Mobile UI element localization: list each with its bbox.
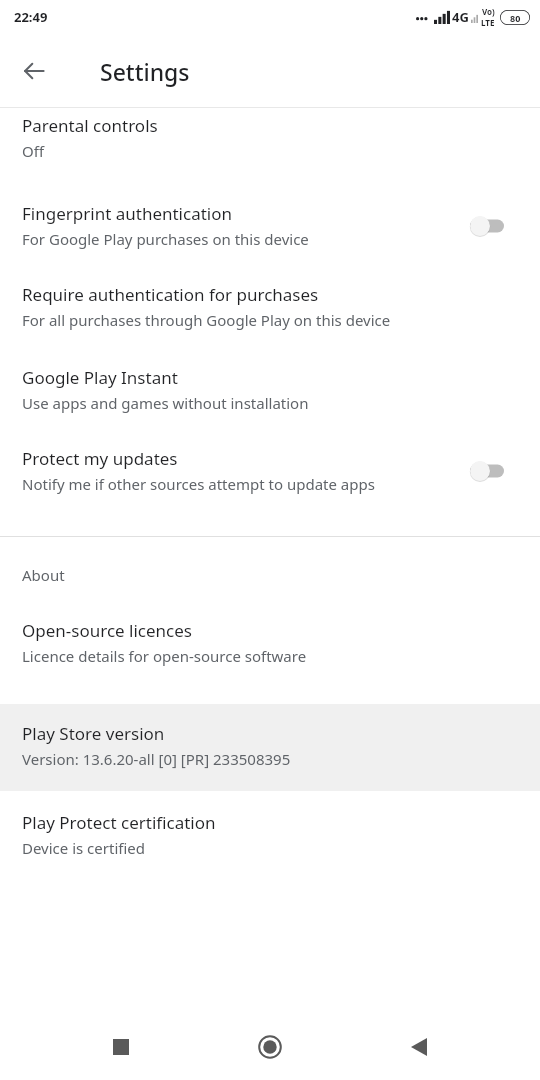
staticText: About: [22, 565, 65, 585]
staticText: Use apps and games without installation: [22, 393, 309, 413]
button[interactable]: Google Play Instant: [0, 348, 540, 431]
staticText: 80: [510, 12, 521, 24]
staticText: Device is certified: [22, 838, 145, 858]
staticText: Notify me if other sources attempt to up…: [22, 474, 375, 494]
staticText: Off: [22, 141, 45, 161]
staticText: Require authentication for purchases: [22, 283, 319, 306]
button[interactable]: Back: [10, 47, 58, 95]
staticText: Open-source licences: [22, 619, 192, 642]
button[interactable]: Fingerprint authentication: [0, 186, 540, 265]
button[interactable]: Play Store version: [0, 704, 540, 791]
staticText: Fingerprint authentication: [22, 202, 233, 225]
staticText: For all purchases through Google Play on…: [22, 310, 391, 330]
button[interactable]: Recent apps: [93, 1019, 149, 1075]
staticText: 22:49: [14, 8, 48, 26]
staticText: LTE: [481, 17, 495, 28]
button[interactable]: Protect my updates: [0, 431, 540, 510]
button[interactable]: Home: [242, 1019, 298, 1075]
staticText: Play Store version: [22, 722, 165, 745]
staticText: Vo): [482, 6, 495, 17]
staticText: Version: 13.6.20-all [0] [PR] 233508395: [22, 749, 291, 769]
button[interactable]: Toggle: [468, 206, 524, 246]
staticText: 4G: [452, 8, 469, 26]
staticText: Google Play Instant: [22, 366, 178, 389]
button[interactable]: Play Protect certification: [0, 811, 540, 858]
staticText: Licence details for open-source software: [22, 646, 307, 666]
staticText: Protect my updates: [22, 447, 178, 470]
staticText: Play Protect certification: [22, 811, 216, 834]
button[interactable]: Toggle: [468, 451, 524, 491]
button[interactable]: Require authentication for purchases: [0, 265, 540, 348]
staticText: Parental controls: [22, 114, 158, 137]
button[interactable]: Parental controls: [0, 108, 540, 186]
staticText: Settings: [100, 56, 190, 87]
button[interactable]: Open-source licences: [0, 619, 540, 686]
button[interactable]: Back: [391, 1019, 447, 1075]
staticText: For Google Play purchases on this device: [22, 229, 309, 249]
